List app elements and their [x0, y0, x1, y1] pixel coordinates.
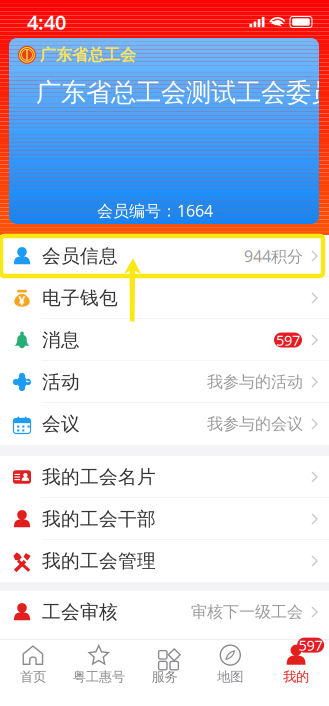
staticText: 会员编号：1664	[97, 200, 213, 221]
staticText: 地图	[217, 669, 243, 685]
button[interactable]: 会员信息	[0, 235, 329, 277]
staticText: 会议	[42, 412, 80, 435]
button[interactable]: 活动	[0, 361, 329, 403]
button[interactable]: 597	[263, 640, 329, 706]
button[interactable]: 我的工会名片	[0, 456, 329, 498]
staticText: 我的工会名片	[42, 465, 156, 488]
button[interactable]: 地图	[197, 640, 263, 706]
staticText: 597	[276, 330, 300, 350]
button[interactable]: ¥	[0, 277, 329, 319]
staticText: ¥	[18, 292, 25, 308]
staticText: 我参与的会议	[207, 414, 303, 434]
staticText: 粤工惠号	[73, 669, 125, 685]
staticText: 活动	[42, 370, 80, 393]
staticText: 审核下一级工会	[191, 602, 303, 622]
button[interactable]: 会议	[0, 403, 329, 445]
button[interactable]: 粤工惠号	[66, 640, 132, 706]
staticText: 我的	[283, 669, 309, 685]
staticText: 944积分	[244, 245, 303, 267]
staticText: 广东省总工会测试工会委员会	[36, 77, 329, 108]
staticText: 我的工会干部	[42, 507, 156, 530]
button[interactable]: 消息	[0, 319, 329, 361]
button[interactable]: 服务	[132, 640, 197, 706]
button[interactable]: 工会审核	[0, 591, 329, 633]
button[interactable]: 我的工会干部	[0, 498, 329, 540]
staticText: 597	[299, 635, 323, 655]
staticText: 我参与的活动	[207, 372, 303, 392]
button[interactable]: 我的工会管理	[0, 540, 329, 582]
staticText: 电子钱包	[42, 286, 118, 309]
staticText: 服务	[151, 669, 177, 685]
staticText: 会员信息	[42, 244, 118, 267]
staticText: 广东省总工会	[40, 45, 136, 65]
staticText: 4:40	[27, 9, 66, 35]
staticText: 首页	[20, 669, 46, 685]
staticText: 我的工会管理	[42, 549, 156, 572]
button[interactable]: 首页	[0, 640, 66, 706]
staticText: 消息	[42, 328, 80, 351]
staticText: 工会审核	[42, 600, 118, 623]
